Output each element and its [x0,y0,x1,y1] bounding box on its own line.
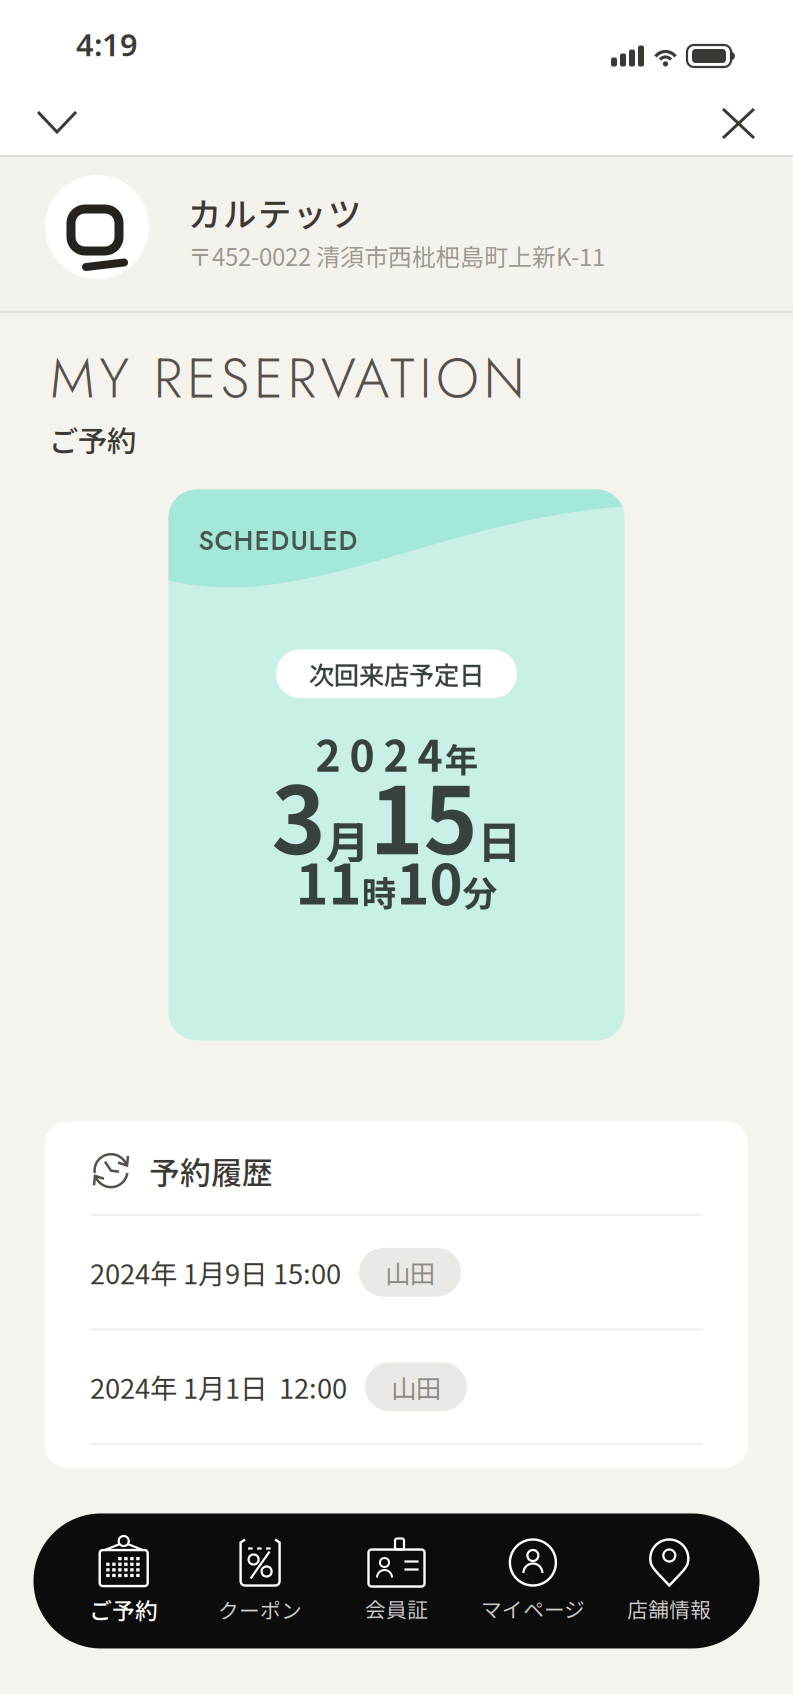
staticText: MY RESERVATION [50,339,524,418]
staticText: 2024年 1月9日 15:00 [90,1252,341,1292]
staticText: 2024年 1月1日 12:00 [90,1367,347,1407]
button[interactable]: Close [723,90,793,138]
staticText: クーポン [218,1594,302,1624]
staticText: 山田 [391,1369,441,1405]
button[interactable]: ご予約 [55,1536,192,1626]
staticText: 2 0 2 4 年 [315,723,477,783]
staticText: 山田 [385,1254,435,1291]
staticText: 3月15日 [271,749,521,879]
staticText: 11時10分 [295,841,497,920]
button[interactable]: マイページ [465,1538,601,1623]
button[interactable]: クーポン [192,1537,328,1624]
staticText: ご予約 [89,1593,158,1626]
staticText: 予約履歴 [149,1148,273,1193]
staticText: マイページ [481,1593,585,1623]
staticText: 4:19 [76,24,138,65]
staticText: ご予約 [49,418,136,460]
staticText: 会員証 [365,1593,428,1623]
button[interactable]: Collapse [0,90,76,132]
staticText: 〒452-0022 清須市西枇杷島町上新K-11 [188,238,605,273]
staticText: 次回来店予定日 [309,655,484,692]
staticText: 店舗情報 [627,1593,711,1623]
staticText: SCHEDULED [198,521,357,560]
button[interactable]: 会員証 [328,1538,465,1623]
staticText: カルテッツ [188,188,361,236]
button[interactable]: 店舗情報 [601,1538,737,1623]
